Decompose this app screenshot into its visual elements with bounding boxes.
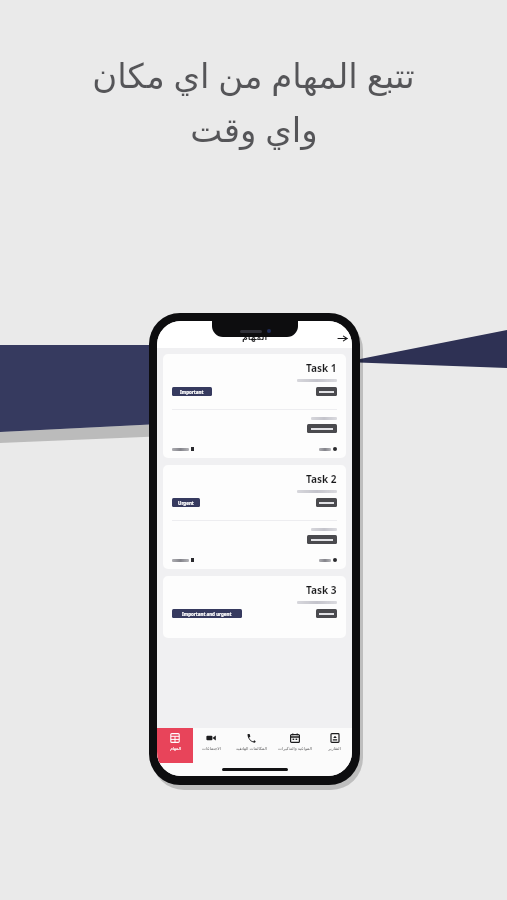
button[interactable]: المهام bbox=[157, 728, 193, 763]
button[interactable]: Tag bbox=[316, 387, 337, 396]
button[interactable]: Important bbox=[172, 387, 212, 396]
button[interactable]: التقارير bbox=[317, 728, 352, 763]
button[interactable]: Tag bbox=[307, 424, 337, 433]
button[interactable]: Important and urgent bbox=[172, 609, 242, 618]
button[interactable]: Task 1 bbox=[163, 354, 346, 458]
button[interactable]: Tag bbox=[316, 609, 337, 618]
button[interactable]: Tag bbox=[316, 498, 337, 507]
staticText: تتبع المهام من اي مكان bbox=[92, 52, 415, 98]
button[interactable]: Tag bbox=[307, 535, 337, 544]
staticText: Urgent bbox=[178, 500, 194, 506]
button[interactable]: المواعيد والتذكيرات bbox=[273, 728, 317, 763]
staticText: المهام bbox=[242, 333, 268, 342]
staticText: Important and urgent bbox=[182, 611, 232, 617]
staticText: المهام bbox=[170, 746, 181, 751]
button[interactable]: Task 3 bbox=[163, 576, 346, 638]
staticText: Task 1 bbox=[306, 361, 337, 375]
button[interactable]: المكالمات الهاتفية bbox=[229, 728, 273, 763]
staticText: Important bbox=[180, 389, 204, 395]
button[interactable]: الاجتماعات bbox=[193, 728, 229, 763]
staticText: المكالمات الهاتفية bbox=[236, 746, 267, 752]
staticText: الاجتماعات bbox=[202, 746, 221, 751]
staticText: المواعيد والتذكيرات bbox=[278, 746, 312, 752]
button[interactable]: Task 2 bbox=[163, 465, 346, 569]
staticText: التقارير bbox=[328, 746, 341, 751]
staticText: Task 2 bbox=[306, 472, 337, 486]
button[interactable]: Logout bbox=[332, 328, 352, 348]
staticText: Task 3 bbox=[306, 583, 337, 597]
button[interactable]: Urgent bbox=[172, 498, 200, 507]
staticText: واي وقت bbox=[190, 106, 318, 152]
